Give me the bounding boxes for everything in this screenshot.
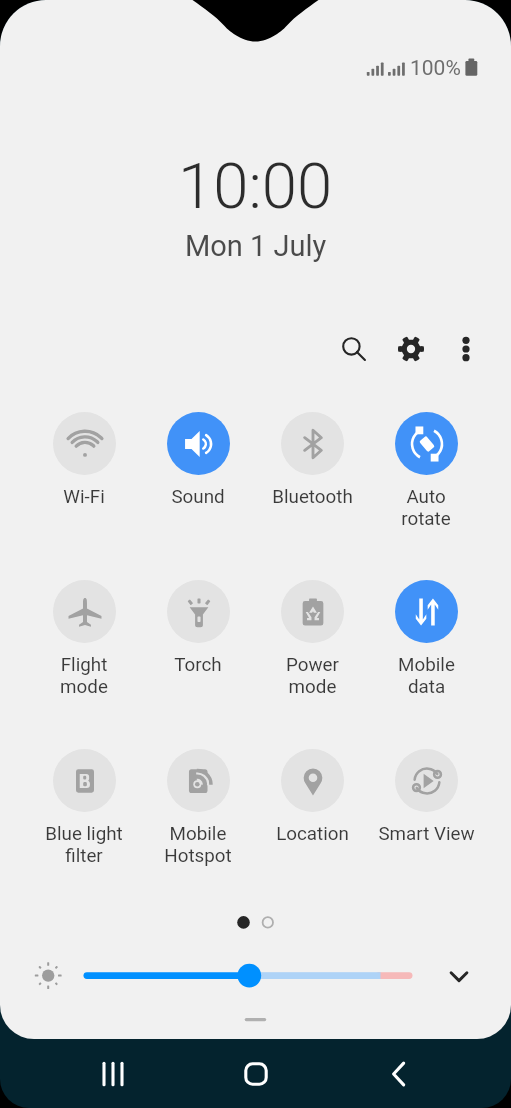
staticText: Smart View <box>378 823 475 845</box>
staticText: 10:00 <box>178 149 333 223</box>
button[interactable]: Wi-Fi <box>27 412 141 508</box>
button[interactable]: Location <box>255 749 369 845</box>
button[interactable]: Bluetooth <box>255 412 369 508</box>
button[interactable]: Mobile Hotspot <box>141 749 255 866</box>
staticText: Auto rotate <box>401 486 451 529</box>
button[interactable]: Settings <box>388 326 433 371</box>
staticText: Power mode <box>286 654 339 697</box>
staticText: Mobile data <box>398 654 455 697</box>
button[interactable]: Auto rotate <box>369 412 483 529</box>
button[interactable]: Expand quick settings <box>436 953 481 998</box>
button[interactable]: Search <box>331 326 376 371</box>
button[interactable]: Torch <box>141 580 255 676</box>
staticText: Torch <box>174 654 222 676</box>
staticText: Flight mode <box>60 654 108 697</box>
staticText: Location <box>276 823 349 845</box>
button[interactable]: Recents <box>83 1044 143 1104</box>
staticText: 100% <box>410 56 461 81</box>
staticText: Mobile Hotspot <box>164 823 232 866</box>
button[interactable]: Flight mode <box>27 580 141 697</box>
button[interactable]: Smart View <box>369 749 483 845</box>
button[interactable]: Mobile data <box>369 580 483 697</box>
button[interactable]: More options <box>443 326 488 371</box>
staticText: Mon 1 July <box>185 229 327 263</box>
button[interactable]: Blue light filter <box>27 749 141 866</box>
staticText: Sound <box>171 486 225 508</box>
staticText: Blue light filter <box>45 823 123 866</box>
button[interactable]: Back <box>369 1044 429 1104</box>
button[interactable]: Home <box>226 1044 286 1104</box>
staticText: Bluetooth <box>272 486 353 508</box>
button[interactable]: Power mode <box>255 580 369 697</box>
staticText: Wi-Fi <box>63 486 105 508</box>
button[interactable]: Sound <box>141 412 255 508</box>
